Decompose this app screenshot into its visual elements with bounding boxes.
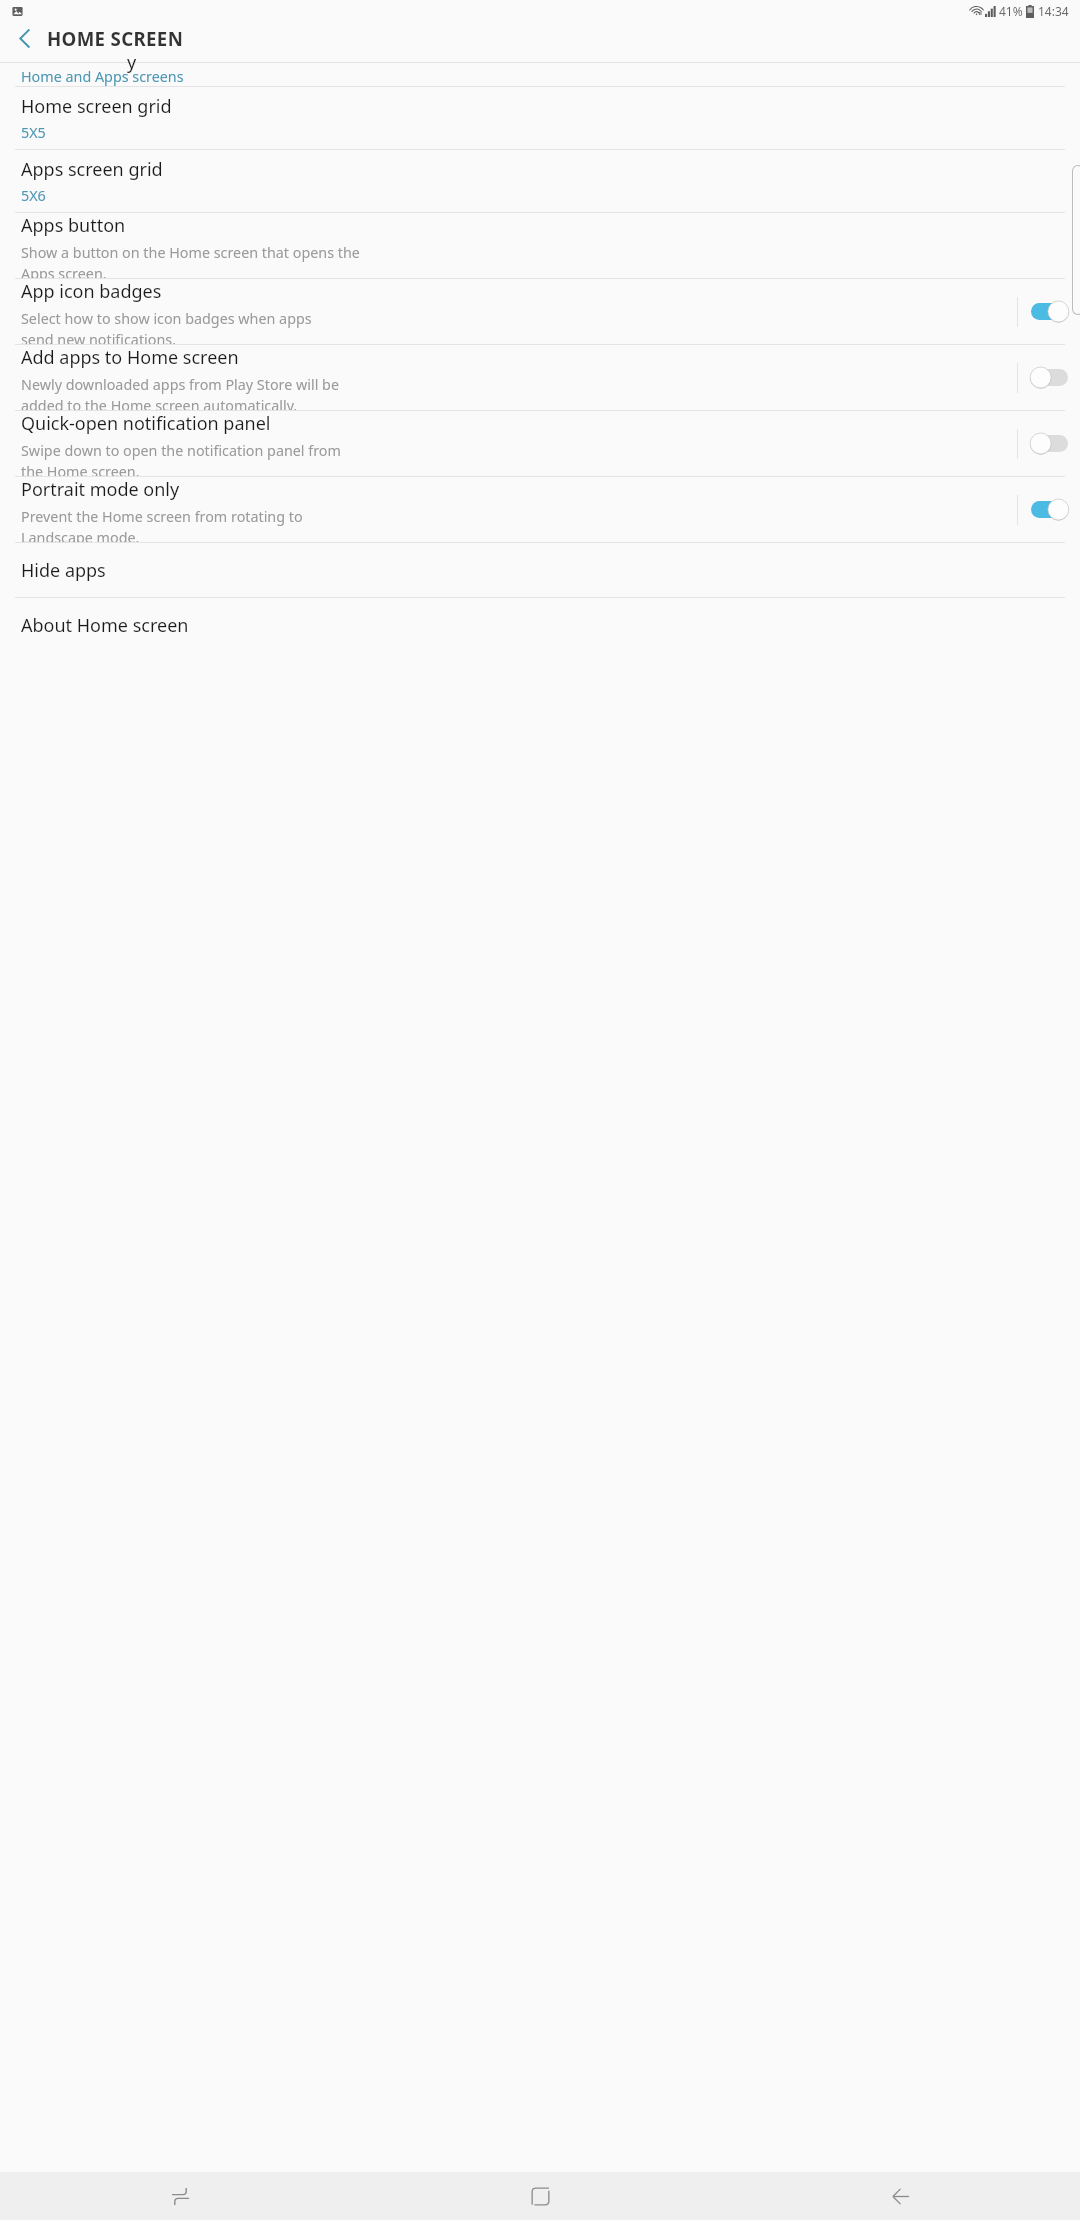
button[interactable]: Hide apps	[0, 543, 1080, 597]
staticText: HOME SCREEN	[47, 26, 184, 51]
button[interactable]: Recents	[0, 2172, 360, 2220]
staticText: App icon badges	[21, 279, 162, 304]
button[interactable]: Quick-open notification panel	[1018, 411, 1080, 476]
button[interactable]: Back	[8, 22, 40, 54]
staticText: 14:34	[1038, 3, 1069, 19]
staticText: Add apps to Home screen	[21, 345, 239, 370]
button[interactable]: Add apps to Home screen	[1018, 345, 1080, 410]
button[interactable]: Home screen grid	[0, 87, 1080, 149]
button[interactable]: Portrait mode only	[0, 477, 1080, 542]
button[interactable]: Apps button	[0, 213, 1080, 278]
staticText: 5X6	[21, 186, 46, 206]
button[interactable]: y	[0, 63, 1080, 86]
button[interactable]: About Home screen	[0, 598, 1080, 652]
button[interactable]: Home	[360, 2172, 720, 2220]
staticText: 41%	[999, 3, 1023, 19]
staticText: Quick-open notification panel	[21, 411, 271, 436]
staticText: Select how to show icon badges when apps…	[21, 309, 312, 344]
staticText: About Home screen	[21, 613, 189, 638]
staticText: Apps button	[21, 213, 126, 238]
button[interactable]: Portrait mode only	[1018, 477, 1080, 542]
staticText: Prevent the Home screen from rotating to…	[21, 507, 303, 542]
staticText: Newly downloaded apps from Play Store wi…	[21, 375, 339, 410]
staticText: Apps screen grid	[21, 157, 163, 182]
button[interactable]: App icon badges	[1018, 279, 1080, 344]
staticText: Portrait mode only	[21, 477, 180, 502]
staticText: Show a button on the Home screen that op…	[21, 243, 360, 278]
staticText: 5X5	[21, 123, 46, 143]
staticText: Hide apps	[21, 558, 106, 583]
staticText: Home screen grid	[21, 94, 172, 119]
button[interactable]: App icon badges	[0, 279, 1080, 344]
button[interactable]: Apps screen grid	[0, 150, 1080, 212]
button[interactable]: Back	[720, 2172, 1080, 2220]
button[interactable]: Quick-open notification panel	[0, 411, 1080, 476]
staticText: y	[127, 50, 137, 73]
button[interactable]: Add apps to Home screen	[0, 345, 1080, 410]
staticText: Swipe down to open the notification pane…	[21, 441, 341, 476]
staticText: Home and Apps screens	[21, 67, 184, 86]
